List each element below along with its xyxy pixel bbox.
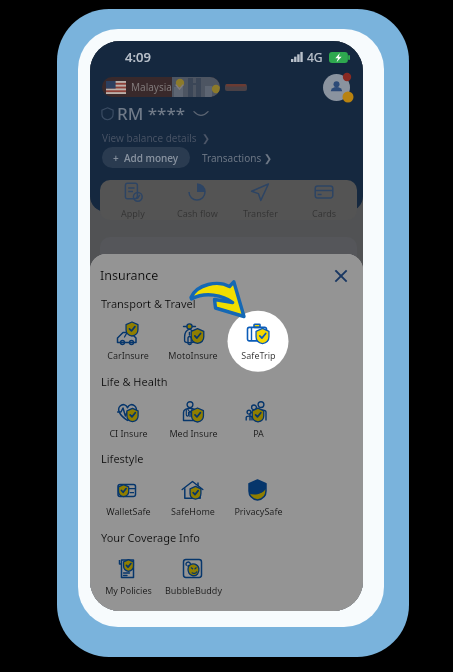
staticText: + Add money	[113, 151, 179, 165]
button[interactable]: SafeHome	[161, 465, 225, 521]
staticText: Med Insure	[169, 427, 218, 439]
button[interactable]: Apply	[103, 182, 163, 219]
staticText: Transactions ❯	[202, 151, 273, 165]
staticText: SafeHome	[171, 505, 215, 517]
staticText: Transfer	[243, 207, 278, 219]
staticText: Lifestyle	[101, 451, 144, 466]
staticText: SafeTrip	[241, 349, 276, 361]
staticText: CI Insure	[109, 427, 148, 439]
button[interactable]: Cards	[294, 182, 354, 219]
staticText: Malaysia	[131, 80, 172, 94]
staticText: CarInsure	[107, 349, 149, 361]
button[interactable]: Malaysia	[102, 77, 220, 97]
staticText: View balance details ❯	[102, 131, 211, 145]
staticText: Life & Health	[101, 374, 168, 389]
staticText: WalletSafe	[106, 505, 151, 517]
staticText: Cards	[312, 207, 337, 219]
button[interactable]: CarInsure	[96, 309, 160, 365]
staticText: Transport & Travel	[101, 296, 196, 311]
staticText: My Policies	[105, 584, 152, 596]
button[interactable]: Cash flow	[167, 182, 227, 219]
staticText: PrivacySafe	[234, 505, 283, 517]
staticText: PA	[253, 427, 264, 439]
button[interactable]: Transfer	[230, 182, 290, 219]
button[interactable]: WalletSafe	[96, 465, 160, 521]
button[interactable]: PA	[226, 387, 290, 443]
staticText: 4G	[307, 49, 323, 65]
button[interactable]: BubbleBuddy	[161, 544, 225, 600]
staticText: BubbleBuddy	[165, 584, 222, 596]
button[interactable]: MotoInsure	[161, 309, 225, 365]
button[interactable]: Profile	[323, 74, 350, 101]
staticText: Apply	[121, 207, 145, 219]
button[interactable]: PrivacySafe	[226, 465, 290, 521]
button[interactable]: Close	[331, 266, 351, 286]
button[interactable]: SafeTrip	[226, 309, 290, 365]
staticText: Your Coverage Info	[101, 530, 200, 545]
button[interactable]: + Add money	[102, 147, 190, 168]
button[interactable]: Med Insure	[161, 387, 225, 443]
staticText: MotoInsure	[168, 349, 218, 361]
button[interactable]: My Policies	[96, 544, 160, 600]
staticText: Cash flow	[177, 207, 218, 219]
button[interactable]: CI Insure	[96, 387, 160, 443]
staticText: 4:09	[125, 48, 151, 66]
staticText: Insurance	[100, 267, 159, 284]
staticText: RM ****	[117, 102, 186, 125]
